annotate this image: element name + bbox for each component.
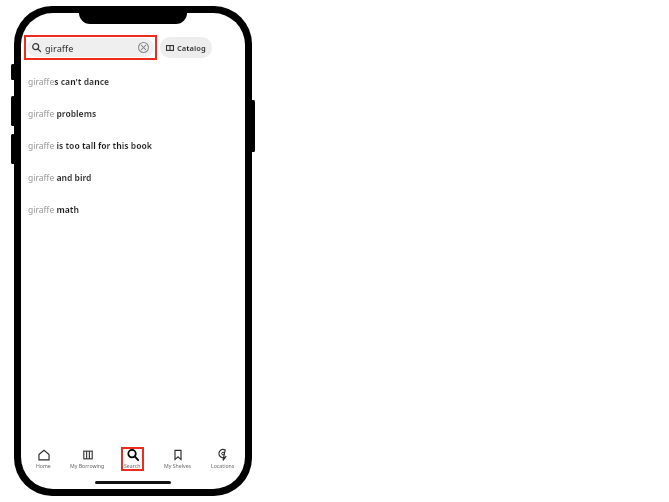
button[interactable]: Home (33, 447, 54, 471)
button[interactable]: giraffes can't dance (21, 66, 245, 98)
staticText: My Shelves (164, 462, 192, 469)
staticText: giraffe math (28, 204, 79, 216)
staticText: giraffes can't dance (28, 76, 110, 88)
staticText: Home (36, 462, 51, 469)
button[interactable]: Clear search (138, 42, 149, 53)
staticText: Locations (211, 462, 235, 469)
staticText: giraffe and bird (28, 172, 92, 184)
button[interactable]: Locations (208, 447, 238, 471)
staticText: Search (124, 462, 141, 469)
button[interactable]: Catalog (160, 37, 212, 58)
staticText: giraffe is too tall for this book (28, 140, 153, 152)
button[interactable]: Search (121, 447, 144, 471)
button[interactable]: giraffe math (21, 194, 245, 226)
staticText: giraffe problems (28, 108, 97, 120)
staticText: giraffe (45, 42, 74, 54)
staticText: Catalog (177, 43, 206, 53)
button[interactable]: giraffe (27, 38, 154, 57)
staticText: My Borrowing (70, 462, 105, 469)
button[interactable]: My Borrowing (67, 447, 108, 471)
button[interactable]: giraffe problems (21, 98, 245, 130)
button[interactable]: My Shelves (161, 447, 195, 471)
button[interactable]: giraffe and bird (21, 162, 245, 194)
button[interactable]: giraffe is too tall for this book (21, 130, 245, 162)
